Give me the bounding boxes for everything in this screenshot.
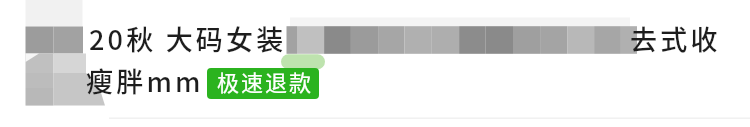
staticText: 极速退款 xyxy=(217,68,314,96)
staticText: 20秋 大码女装 xyxy=(89,19,287,58)
staticText: 瘦胖mm xyxy=(86,61,204,100)
button[interactable]: 极速退款 xyxy=(207,68,319,99)
staticText: 去式收 xyxy=(630,19,721,58)
